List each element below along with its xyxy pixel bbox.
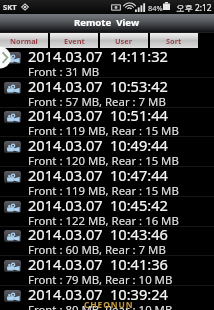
staticText: 14:11:32 bbox=[110, 46, 168, 66]
button[interactable]: Sort bbox=[150, 33, 198, 48]
staticText: 10:45:42 bbox=[110, 195, 168, 215]
button[interactable]: 2014.03.07 bbox=[0, 167, 214, 197]
staticText: 10:53:42 bbox=[110, 76, 168, 96]
staticText: User bbox=[115, 36, 133, 46]
button[interactable]: 2014.03.07 bbox=[0, 78, 214, 108]
button[interactable]: 2014.03.07 bbox=[0, 286, 214, 310]
staticText: Normal bbox=[10, 36, 38, 46]
button[interactable]: 2014.03.07 bbox=[0, 48, 214, 78]
staticText: Front : 120 MB, Rear : 15 MB bbox=[28, 153, 179, 169]
staticText: 84% bbox=[148, 3, 163, 13]
staticText: CHEONUN bbox=[84, 299, 134, 310]
staticText: 10:49:44 bbox=[110, 135, 168, 155]
staticText: 2014.03.07 bbox=[28, 165, 103, 185]
button[interactable]: 2014.03.07 bbox=[0, 197, 214, 227]
staticText: SKT bbox=[3, 2, 17, 12]
staticText: 2014.03.07 bbox=[28, 105, 103, 125]
staticText: Front : 79 MB, Rear : 10 MB bbox=[28, 272, 173, 288]
staticText: 2014.03.07 bbox=[28, 135, 103, 155]
button[interactable]: 2014.03.07 bbox=[0, 226, 214, 256]
staticText: 10:41:36 bbox=[110, 254, 168, 274]
button[interactable]: 2014.03.07 bbox=[0, 107, 214, 137]
staticText: 2014.03.07 bbox=[28, 284, 103, 304]
button[interactable]: User bbox=[100, 33, 148, 48]
staticText: Front : 122 MB, Rear : 16 MB bbox=[28, 213, 179, 229]
staticText: 2014.03.07 bbox=[28, 195, 103, 215]
staticText: 2014.03.07 bbox=[28, 224, 103, 244]
staticText: 2014.03.07 bbox=[28, 76, 103, 96]
staticText: 2014.03.07 bbox=[28, 254, 103, 274]
staticText: Front : 80 MB, Rear : 10 MB bbox=[28, 302, 173, 310]
staticText: 10:39:24 bbox=[110, 284, 168, 304]
button[interactable]: 2014.03.07 bbox=[0, 256, 214, 286]
button[interactable]: 2014.03.07 bbox=[0, 137, 214, 167]
staticText: Front : 60 MB, Rear : 7 MB bbox=[28, 242, 166, 258]
staticText: 10:51:44 bbox=[110, 105, 168, 125]
staticText: Front : 57 MB, Rear : 7 MB bbox=[28, 94, 166, 110]
staticText: 10:47:44 bbox=[110, 165, 168, 185]
staticText: Sort bbox=[166, 36, 182, 46]
staticText: 오후 2:12 bbox=[176, 2, 212, 13]
button[interactable]: Event bbox=[50, 33, 98, 48]
staticText: Front : 31 MB bbox=[28, 64, 100, 80]
staticText: 10:43:46 bbox=[110, 224, 168, 244]
staticText: Front : 119 MB, Rear : 15 MB bbox=[28, 123, 179, 139]
staticText: Event bbox=[64, 36, 85, 46]
button[interactable]: Normal bbox=[0, 33, 48, 48]
staticText: Front : 119 MB, Rear : 15 MB bbox=[28, 183, 179, 199]
staticText: Remote View bbox=[74, 16, 140, 29]
staticText: 2014.03.07 bbox=[28, 46, 103, 66]
